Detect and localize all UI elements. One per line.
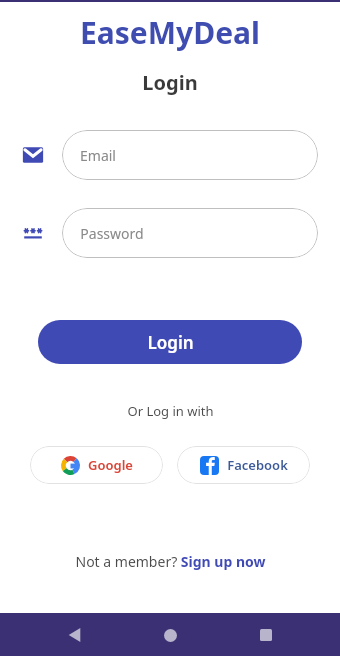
other: Email [22, 144, 44, 166]
staticText: Google [88, 456, 133, 474]
other: Password [22, 222, 44, 244]
staticText: Password [80, 224, 144, 243]
button[interactable]: Google [30, 446, 163, 484]
button[interactable]: Email [62, 130, 318, 180]
staticText: Login [147, 331, 194, 354]
staticText: Or Log in with [127, 402, 214, 420]
button[interactable]: Not a member? Sign up now [75, 552, 266, 571]
button[interactable]: Password [62, 208, 318, 258]
button[interactable]: Home [149, 614, 191, 656]
staticText: Login [142, 69, 198, 96]
staticText: Facebook [227, 456, 288, 474]
button[interactable]: Login [38, 320, 302, 364]
button[interactable]: Facebook [177, 446, 310, 484]
staticText: Email [80, 146, 116, 165]
button[interactable]: Back [54, 614, 96, 656]
button[interactable]: Recent apps [245, 614, 287, 656]
staticText: EaseMyDeal [80, 12, 260, 53]
staticText: Not a member? Sign up now [75, 552, 266, 571]
